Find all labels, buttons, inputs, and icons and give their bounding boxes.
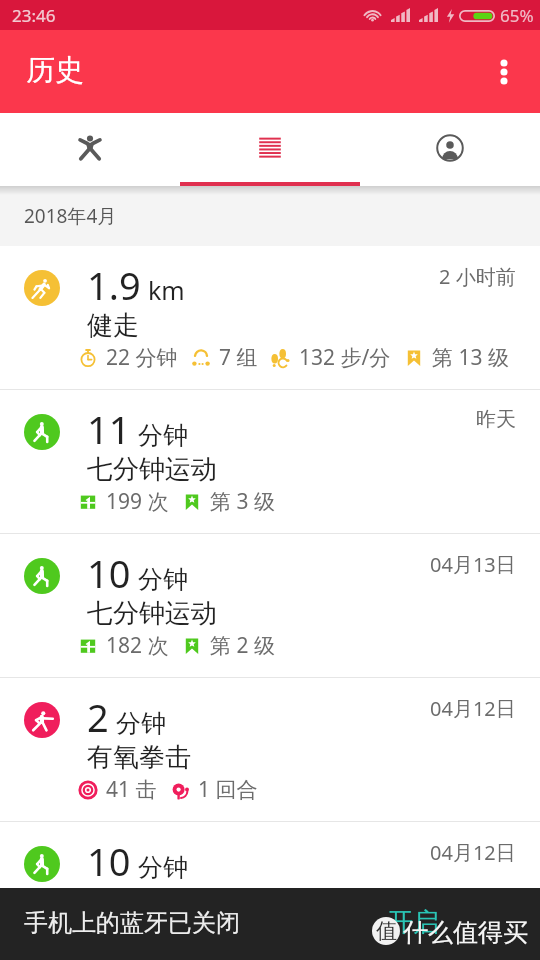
- staticText: 04月12日: [430, 839, 516, 866]
- button[interactable]: 11: [0, 390, 540, 534]
- staticText: 2018年4月: [24, 203, 117, 229]
- staticText: 手机上的蓝牙已关闭: [24, 908, 240, 938]
- staticText: 七分钟运动: [87, 885, 217, 918]
- staticText: 132 步/分: [299, 343, 391, 372]
- staticText: 1.9: [87, 259, 141, 311]
- staticText: 七分钟运动: [87, 597, 217, 630]
- staticText: 第 2 级: [210, 919, 275, 948]
- staticText: 有氧拳击: [87, 741, 191, 774]
- staticText: 值: [376, 918, 397, 944]
- staticText: 10: [87, 547, 131, 599]
- button[interactable]: Activity: [0, 113, 180, 183]
- staticText: 昨天: [476, 407, 516, 432]
- button[interactable]: 开启: [387, 906, 439, 939]
- staticText: 第 2 级: [210, 631, 275, 660]
- staticText: km: [148, 273, 185, 307]
- staticText: 分钟: [138, 564, 188, 595]
- staticText: 41 击: [106, 775, 157, 804]
- staticText: 开启: [387, 906, 439, 939]
- staticText: 健走: [87, 309, 139, 342]
- staticText: 第 13 级: [432, 343, 509, 372]
- staticText: 分钟: [138, 852, 188, 883]
- button[interactable]: More options: [476, 44, 532, 100]
- staticText: 04月13日: [430, 551, 516, 578]
- staticText: 150 次: [106, 919, 169, 948]
- staticText: 65%: [500, 4, 534, 27]
- staticText: 04月12日: [430, 695, 516, 722]
- staticText: 182 次: [106, 631, 169, 660]
- staticText: 历史: [26, 52, 84, 89]
- staticText: 1 回合: [198, 775, 258, 804]
- staticText: 2 小时前: [439, 263, 516, 290]
- staticText: 11: [87, 403, 131, 455]
- button[interactable]: Profile: [360, 113, 540, 183]
- button[interactable]: 10: [0, 822, 540, 960]
- staticText: 7 组: [219, 343, 258, 372]
- button[interactable]: 10: [0, 534, 540, 678]
- button[interactable]: History: [180, 113, 360, 183]
- staticText: 第 3 级: [210, 487, 275, 516]
- staticText: 分钟: [138, 420, 188, 451]
- staticText: 22 分钟: [106, 343, 178, 372]
- button[interactable]: 2: [0, 678, 540, 822]
- staticText: 199 次: [106, 487, 169, 516]
- staticText: 七分钟运动: [87, 453, 217, 486]
- staticText: 10: [87, 835, 131, 887]
- staticText: 分钟: [116, 708, 166, 739]
- staticText: 23:46: [12, 4, 56, 27]
- staticText: 什么值得买: [403, 917, 528, 948]
- staticText: 2: [87, 691, 109, 743]
- button[interactable]: 1.9: [0, 246, 540, 390]
